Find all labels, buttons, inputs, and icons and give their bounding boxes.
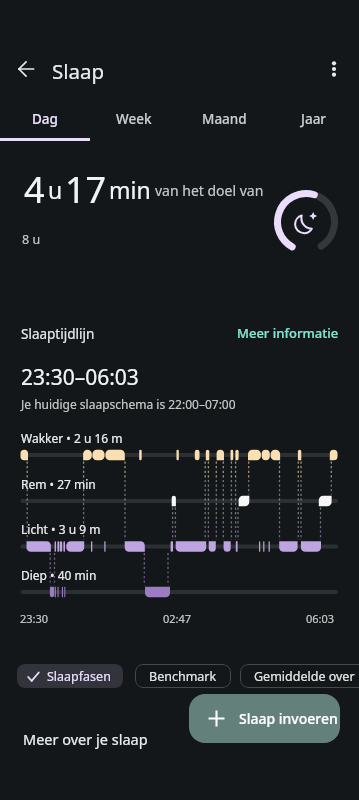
button[interactable]: Terug xyxy=(6,49,46,89)
staticText: Je huidige slaapschema is 22:00–07:00 xyxy=(21,396,236,412)
staticText: Slaapfasen xyxy=(47,668,111,685)
staticText: Meer over je slaap xyxy=(23,729,148,749)
button[interactable]: Slaapfasen xyxy=(17,664,123,688)
staticText: Jaar xyxy=(301,110,327,128)
button[interactable]: Week xyxy=(89,97,179,141)
staticText: 02:47 xyxy=(163,611,192,626)
button[interactable]: Gemiddelde over 3 xyxy=(240,664,359,688)
staticText: Maand xyxy=(202,110,247,128)
staticText: Meer informatie xyxy=(237,324,339,342)
staticText: Licht • 3 u 9 m xyxy=(21,521,101,537)
staticText: u xyxy=(48,174,63,205)
staticText: 17 xyxy=(65,165,107,214)
staticText: Dag xyxy=(32,110,58,128)
staticText: Diep • 40 min xyxy=(21,567,97,583)
staticText: Slaap xyxy=(52,57,105,85)
staticText: 23:30–06:03 xyxy=(21,363,139,392)
staticText: 4 xyxy=(24,165,45,214)
staticText: 8 u xyxy=(22,231,41,248)
staticText: Wakker • 2 u 16 m xyxy=(21,430,123,446)
staticText: Gemiddelde over 3 xyxy=(254,668,359,685)
button[interactable]: Dag xyxy=(0,97,89,141)
button[interactable]: Meer opties xyxy=(314,49,354,89)
staticText: van het doel van xyxy=(155,181,264,200)
button[interactable]: Jaar xyxy=(269,97,359,141)
staticText: 23:30 xyxy=(20,611,49,626)
button[interactable]: Maand xyxy=(179,97,269,141)
staticText: Week xyxy=(116,110,152,128)
staticText: Slaap invoeren xyxy=(239,709,338,728)
button[interactable]: Benchmark xyxy=(135,664,231,688)
staticText: min xyxy=(109,174,151,205)
button[interactable]: Meer informatie xyxy=(237,324,339,342)
staticText: Rem • 27 min xyxy=(21,476,96,492)
button[interactable]: Slaap invoeren xyxy=(189,694,340,743)
staticText: Slaaptijdlijn xyxy=(21,325,95,343)
staticText: 06:03 xyxy=(306,611,335,626)
staticText: Benchmark xyxy=(149,668,217,685)
